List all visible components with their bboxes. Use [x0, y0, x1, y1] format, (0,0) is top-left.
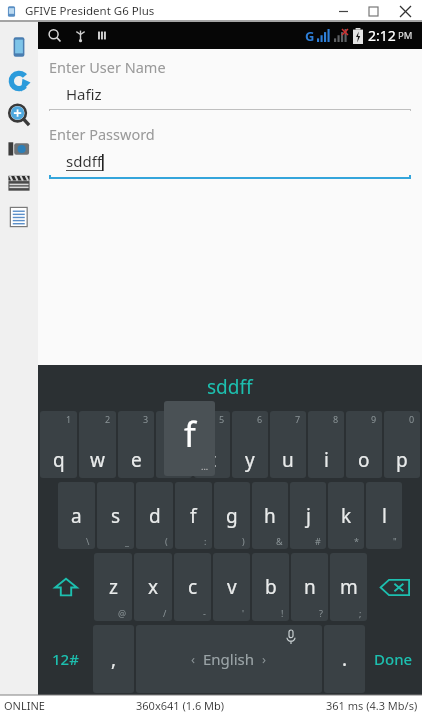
button[interactable]: # — [290, 482, 326, 549]
staticText: p — [396, 447, 408, 473]
button[interactable]: Hafiz — [49, 84, 411, 111]
button[interactable]: Device — [2, 30, 36, 64]
button[interactable]: 12# — [40, 625, 91, 693]
button[interactable]: 5 — [194, 411, 230, 478]
button[interactable]: Logs — [2, 200, 36, 234]
staticText: f — [190, 503, 197, 529]
staticText: " — [393, 535, 397, 547]
button[interactable]: 9 — [346, 411, 382, 478]
staticText: 0 — [409, 413, 415, 425]
staticText: z — [109, 574, 118, 600]
staticText: h — [264, 503, 276, 529]
button[interactable]: Done — [367, 625, 420, 693]
button[interactable]: ; — [330, 553, 367, 621]
button[interactable]: sddff — [49, 151, 411, 179]
button[interactable]: Backspace — [369, 553, 420, 621]
staticText: 5 — [219, 413, 225, 425]
button[interactable]: 0 — [384, 411, 420, 478]
button[interactable]: - — [174, 553, 211, 621]
staticText: ; — [359, 607, 362, 619]
staticText: Hafiz — [66, 84, 102, 104]
button[interactable]: . — [324, 625, 365, 693]
button[interactable]: * — [328, 482, 364, 549]
button[interactable]: 2 — [79, 411, 116, 478]
button[interactable]: 1 — [40, 411, 77, 478]
staticText: sddff — [66, 151, 102, 171]
staticText: 7 — [295, 413, 301, 425]
staticText: ONLINE — [4, 698, 45, 713]
button[interactable]: , — [93, 625, 134, 693]
staticText: _ — [125, 535, 129, 547]
staticText: & — [276, 535, 283, 547]
button[interactable]: / — [134, 553, 172, 621]
staticText: ( — [165, 535, 168, 547]
button[interactable]: : — [175, 482, 212, 549]
staticText: m — [340, 574, 358, 600]
button[interactable]: @ — [94, 553, 132, 621]
button[interactable]: " — [366, 482, 402, 549]
staticText: v — [227, 574, 237, 600]
button[interactable]: 6 — [232, 411, 268, 478]
button[interactable]: 4 — [156, 411, 192, 478]
staticText: 8 — [333, 413, 339, 425]
button[interactable]: sddff — [207, 374, 253, 400]
staticText: u — [282, 447, 294, 473]
staticText: English — [203, 649, 255, 669]
staticText: 12# — [52, 649, 79, 669]
staticText: k — [341, 503, 352, 529]
staticText: f — [184, 411, 196, 457]
button[interactable]: _ — [97, 482, 134, 549]
button[interactable]: Record video — [2, 166, 36, 200]
button[interactable]: Close — [388, 0, 422, 22]
staticText: s — [111, 503, 121, 529]
button[interactable]: ( — [136, 482, 173, 549]
staticText: ? — [319, 607, 323, 619]
staticText: j — [306, 503, 311, 529]
staticText: w — [90, 447, 105, 473]
staticText: 361 ms (4.3 Mb/s) — [326, 698, 418, 713]
staticText: y — [245, 447, 255, 473]
staticText: Done — [374, 649, 413, 669]
button[interactable]: Screenshot — [2, 132, 36, 166]
staticText: * — [354, 535, 359, 547]
button[interactable]: Space — [136, 625, 322, 693]
staticText: / — [163, 607, 167, 619]
staticText: G — [305, 27, 315, 45]
button[interactable]: Maximize — [358, 0, 388, 22]
staticText: ! — [281, 607, 284, 619]
staticText: - — [203, 607, 206, 619]
staticText: Enter Password — [49, 124, 155, 144]
staticText: Enter User Name — [49, 57, 166, 77]
staticText: ‹ — [191, 650, 196, 668]
staticText: , — [111, 646, 117, 672]
staticText: \ — [86, 535, 90, 547]
staticText: x — [148, 574, 159, 600]
staticText: › — [262, 650, 267, 668]
staticText: # — [315, 535, 321, 547]
button[interactable]: Rotate — [2, 64, 36, 98]
staticText: 1 — [66, 413, 72, 425]
staticText: ' — [242, 607, 245, 619]
staticText: q — [53, 447, 65, 473]
button[interactable]: Zoom in — [2, 98, 36, 132]
staticText: e — [131, 447, 142, 473]
staticText: PM — [398, 29, 413, 42]
button[interactable]: Minimize — [328, 0, 358, 22]
button[interactable]: ) — [214, 482, 250, 549]
staticText: c — [188, 574, 198, 600]
button[interactable]: 7 — [270, 411, 306, 478]
button[interactable]: & — [252, 482, 288, 549]
button[interactable]: ! — [252, 553, 289, 621]
staticText: ) — [242, 535, 245, 547]
button[interactable]: 3 — [118, 411, 154, 478]
button[interactable]: ' — [213, 553, 250, 621]
button[interactable]: \ — [58, 482, 95, 549]
button[interactable]: Shift — [40, 553, 92, 621]
staticText: 2 — [105, 413, 111, 425]
staticText: o — [358, 447, 370, 473]
staticText: 6 — [257, 413, 263, 425]
button[interactable]: ? — [291, 553, 328, 621]
staticText: g — [226, 503, 238, 529]
button[interactable]: 8 — [308, 411, 344, 478]
